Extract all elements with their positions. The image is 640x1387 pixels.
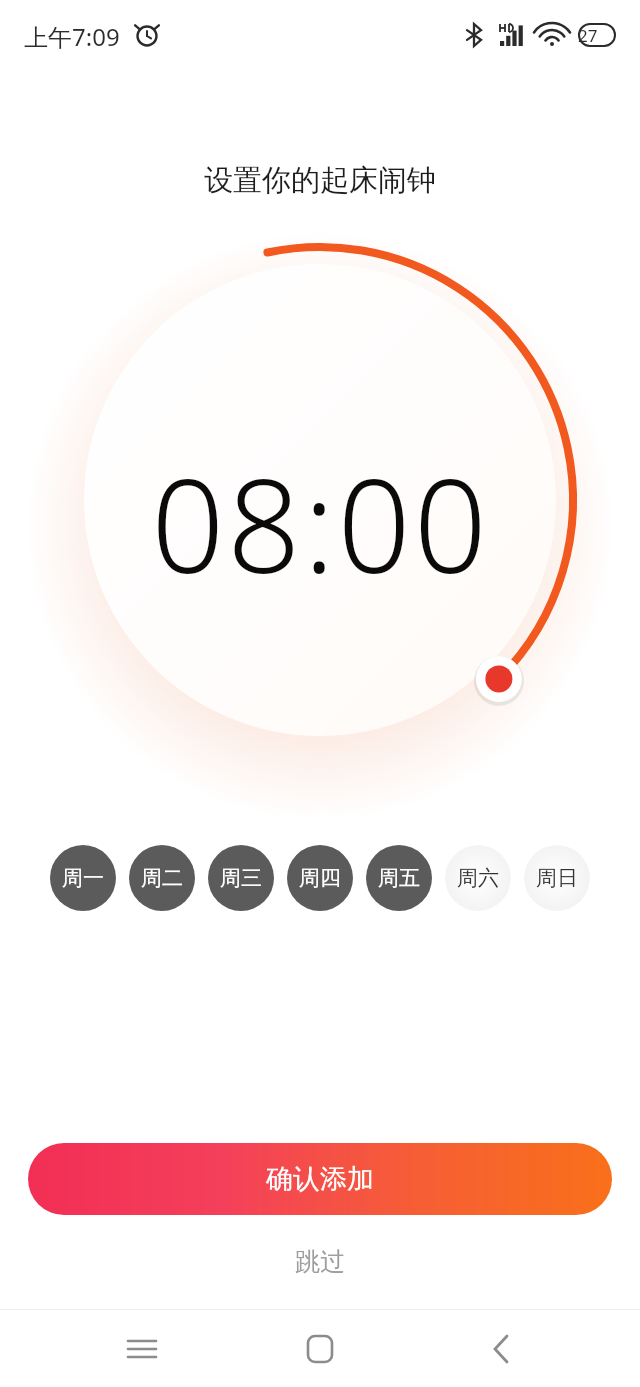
staticText: 周五 [378, 865, 420, 891]
staticText: 08:00 [151, 436, 490, 610]
button[interactable]: Back [462, 1313, 534, 1385]
button[interactable]: 周四 [287, 845, 353, 911]
staticText: 周日 [536, 865, 578, 891]
button[interactable]: 周五 [366, 845, 432, 911]
button[interactable]: Home [284, 1313, 356, 1385]
button[interactable]: Recent apps [106, 1313, 178, 1385]
staticText: 上午7:09 [24, 20, 120, 53]
button[interactable]: 跳过 [269, 1238, 371, 1285]
staticText: 确认添加 [266, 1162, 374, 1196]
button[interactable]: 周日 [524, 845, 590, 911]
staticText: 周三 [220, 865, 262, 891]
button[interactable]: 周六 [445, 845, 511, 911]
staticText: 跳过 [295, 1246, 345, 1277]
staticText: 27 [578, 24, 598, 47]
button[interactable]: 周三 [208, 845, 274, 911]
staticText: 周二 [141, 865, 183, 891]
staticText: 周四 [299, 865, 341, 891]
staticText: 设置你的起床闹钟 [204, 162, 436, 199]
staticText: 周六 [457, 865, 499, 891]
staticText: 周一 [62, 865, 104, 891]
button[interactable]: 周一 [50, 845, 116, 911]
button[interactable]: 确认添加 [28, 1143, 612, 1215]
button[interactable]: 周二 [129, 845, 195, 911]
